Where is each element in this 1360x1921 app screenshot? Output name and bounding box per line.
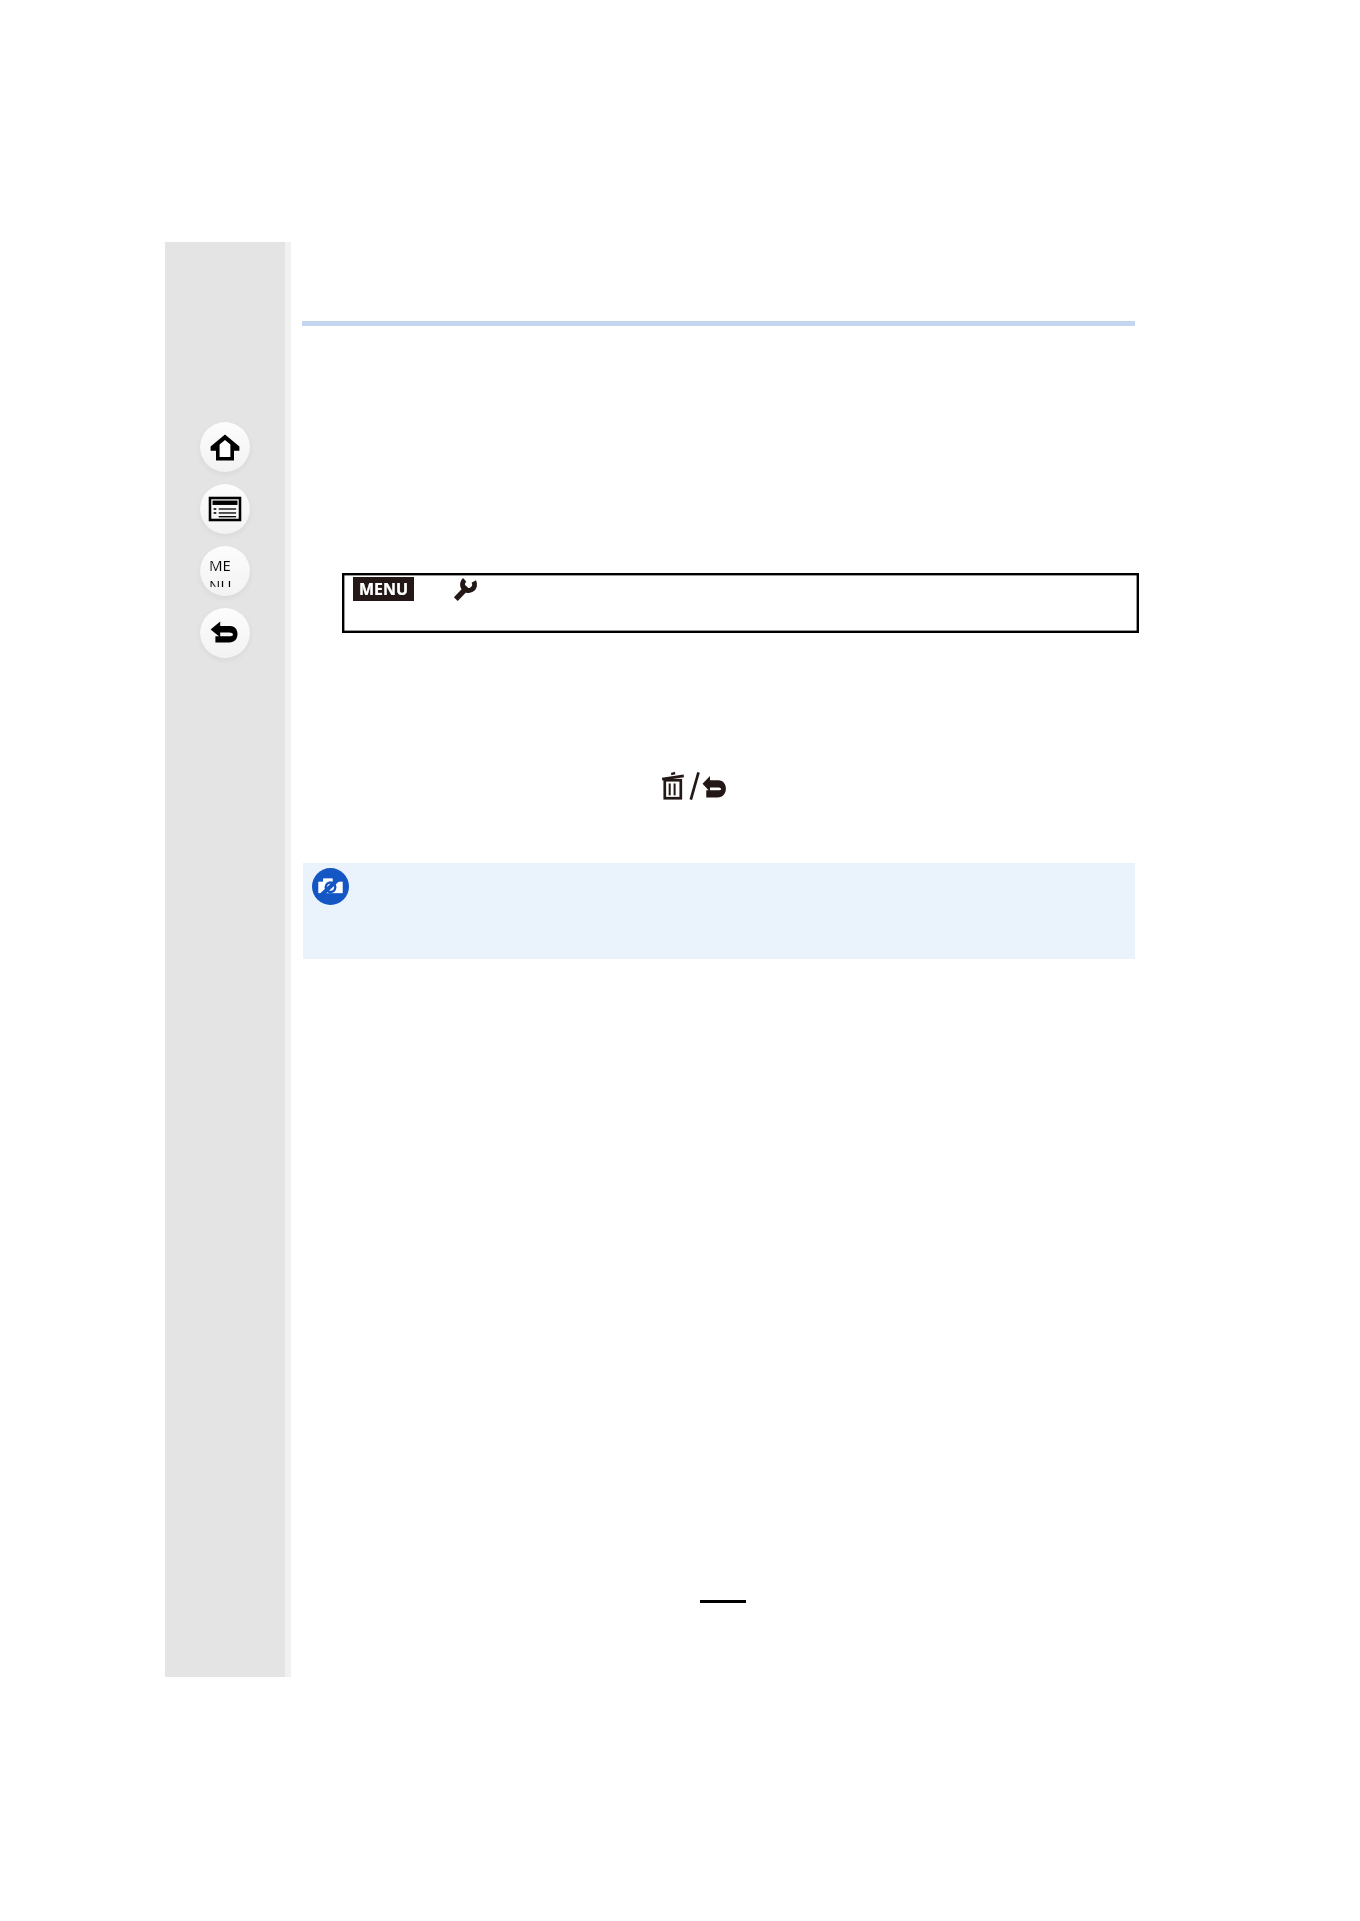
staticText: MENU bbox=[209, 555, 241, 587]
button[interactable]: Menu bbox=[196, 542, 254, 600]
staticText: MENU bbox=[359, 578, 409, 600]
button[interactable]: Contents bbox=[196, 480, 254, 538]
button[interactable]: MENU bbox=[342, 573, 1139, 633]
button[interactable]: Back bbox=[196, 604, 254, 662]
button[interactable]: Home bbox=[196, 418, 254, 476]
